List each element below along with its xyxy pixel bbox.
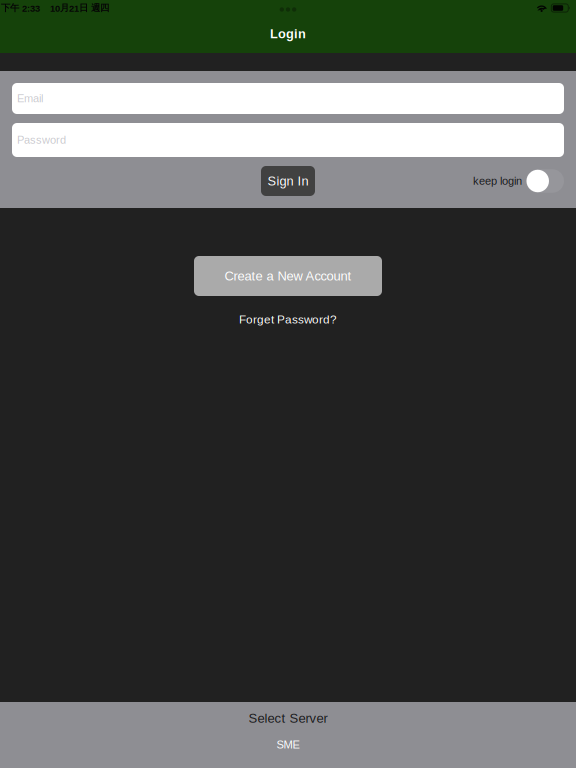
button[interactable]: Password (12, 123, 564, 157)
button[interactable]: Sign In (261, 166, 315, 196)
button[interactable]: keep login (473, 169, 564, 193)
staticText: Login (270, 27, 306, 41)
staticText: Password (17, 134, 66, 146)
staticText: Email (17, 92, 43, 105)
staticText: SME (276, 738, 299, 751)
button[interactable]: Email (12, 83, 564, 114)
staticText: keep login (473, 175, 522, 187)
staticText: 10月21日 週四 (50, 2, 109, 14)
button[interactable]: Create a New Account (194, 256, 382, 296)
staticText: 下午 2:33 (1, 2, 40, 14)
button[interactable]: SME (0, 735, 576, 755)
staticText: Create a New Account (224, 269, 351, 283)
button[interactable]: Forget Password? (229, 310, 347, 329)
staticText: Sign In (267, 174, 308, 188)
staticText: Forget Password? (239, 313, 337, 326)
staticText: Select Server (248, 711, 327, 726)
